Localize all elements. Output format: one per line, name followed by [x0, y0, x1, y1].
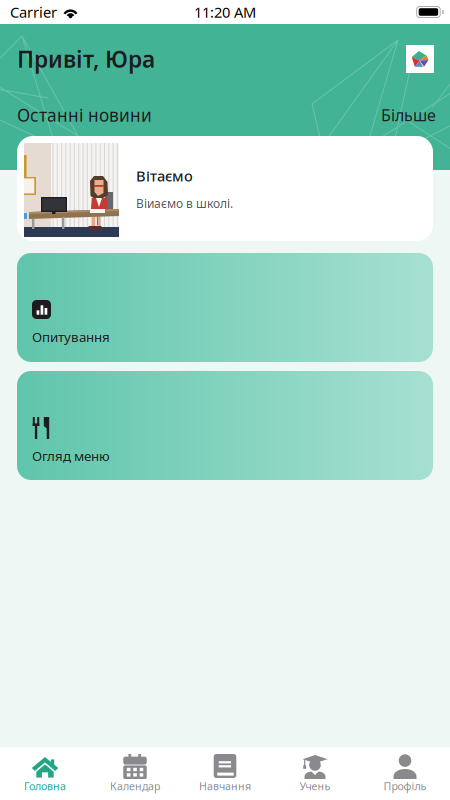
staticText: Віиаємо в школі.	[136, 195, 233, 211]
staticText: Carrier	[10, 2, 57, 22]
button[interactable]: Опитування	[17, 253, 433, 362]
staticText: Привіт, Юра	[17, 44, 155, 74]
button[interactable]: Календар	[90, 747, 180, 800]
button[interactable]: Більше	[381, 104, 436, 126]
staticText: Вітаємо	[136, 166, 193, 185]
button[interactable]: Головна	[0, 747, 90, 800]
button[interactable]: Профіль	[360, 747, 450, 800]
button[interactable]: Вітаємо	[17, 136, 433, 241]
staticText: 11:20 AM	[194, 2, 256, 22]
staticText: Огляд меню	[32, 447, 110, 465]
staticText: Більше	[381, 104, 436, 126]
staticText: Календар	[110, 779, 160, 793]
button[interactable]: Навчання	[180, 747, 270, 800]
button[interactable]: Логотип школи	[406, 45, 434, 73]
staticText: Головна	[24, 779, 66, 793]
button[interactable]: Огляд меню	[17, 371, 433, 480]
staticText: Профіль	[383, 779, 426, 793]
staticText: Опитування	[32, 328, 110, 346]
staticText: Останні новини	[17, 103, 152, 126]
staticText: Навчання	[199, 779, 251, 793]
staticText: Учень	[299, 779, 330, 793]
button[interactable]: Учень	[270, 747, 360, 800]
